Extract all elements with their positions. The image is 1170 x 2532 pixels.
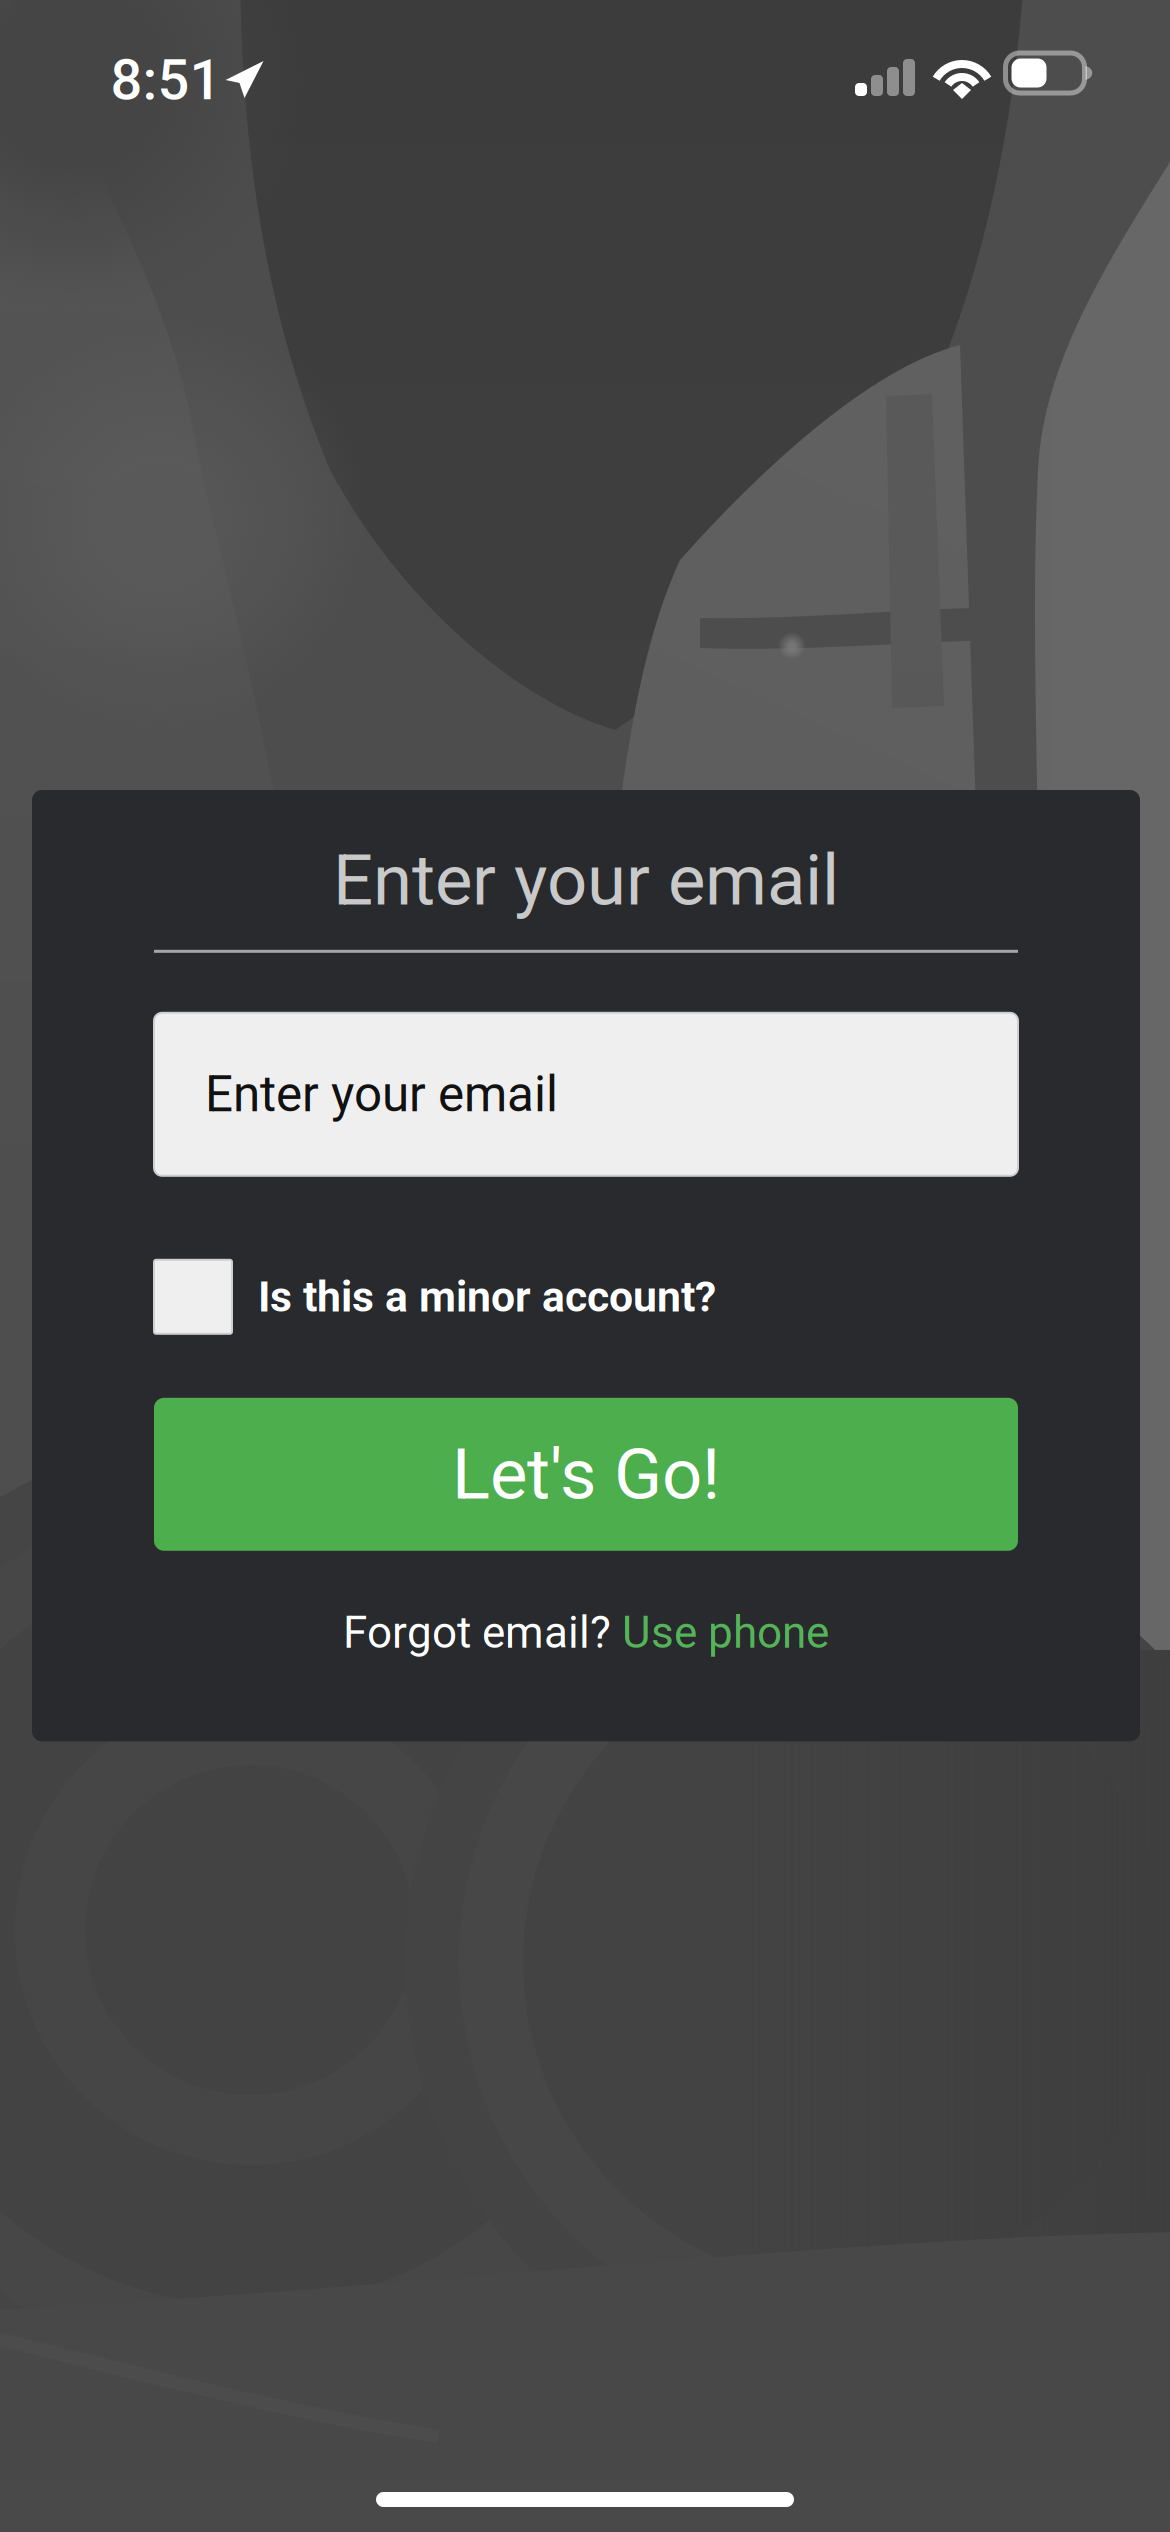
staticText: Let's Go!: [452, 1433, 720, 1516]
button[interactable]: Use phone: [622, 1607, 829, 1658]
button[interactable]: Let's Go!: [154, 1398, 1018, 1551]
staticText: Forgot email?: [343, 1607, 622, 1658]
staticText: Use phone: [622, 1607, 829, 1658]
button[interactable]: Is this a minor account?: [154, 1260, 1018, 1334]
staticText: Enter your email: [333, 839, 839, 922]
staticText: Enter your email: [205, 1065, 558, 1123]
staticText: Is this a minor account?: [258, 1272, 716, 1322]
staticText: 8:51: [110, 47, 221, 113]
button[interactable]: Enter your email: [154, 1013, 1018, 1176]
